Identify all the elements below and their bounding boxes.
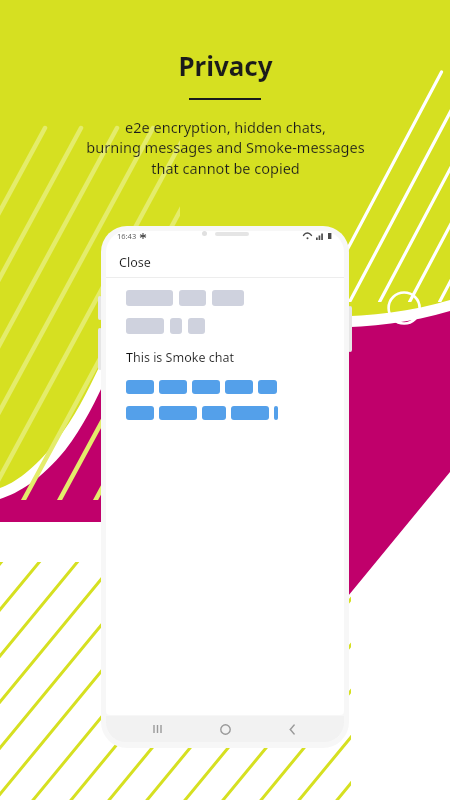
button[interactable]: Home xyxy=(210,716,240,742)
staticText: Privacy xyxy=(178,48,273,83)
button[interactable]: Recent apps xyxy=(143,716,173,742)
staticText: This is Smoke chat xyxy=(126,349,234,366)
staticText: Close xyxy=(119,254,151,271)
button[interactable]: Back xyxy=(277,716,307,742)
button[interactable]: Close xyxy=(106,248,344,277)
staticText: e2e encryption, hidden chats, burning me… xyxy=(86,117,365,179)
staticText: 16:43 xyxy=(117,231,137,241)
